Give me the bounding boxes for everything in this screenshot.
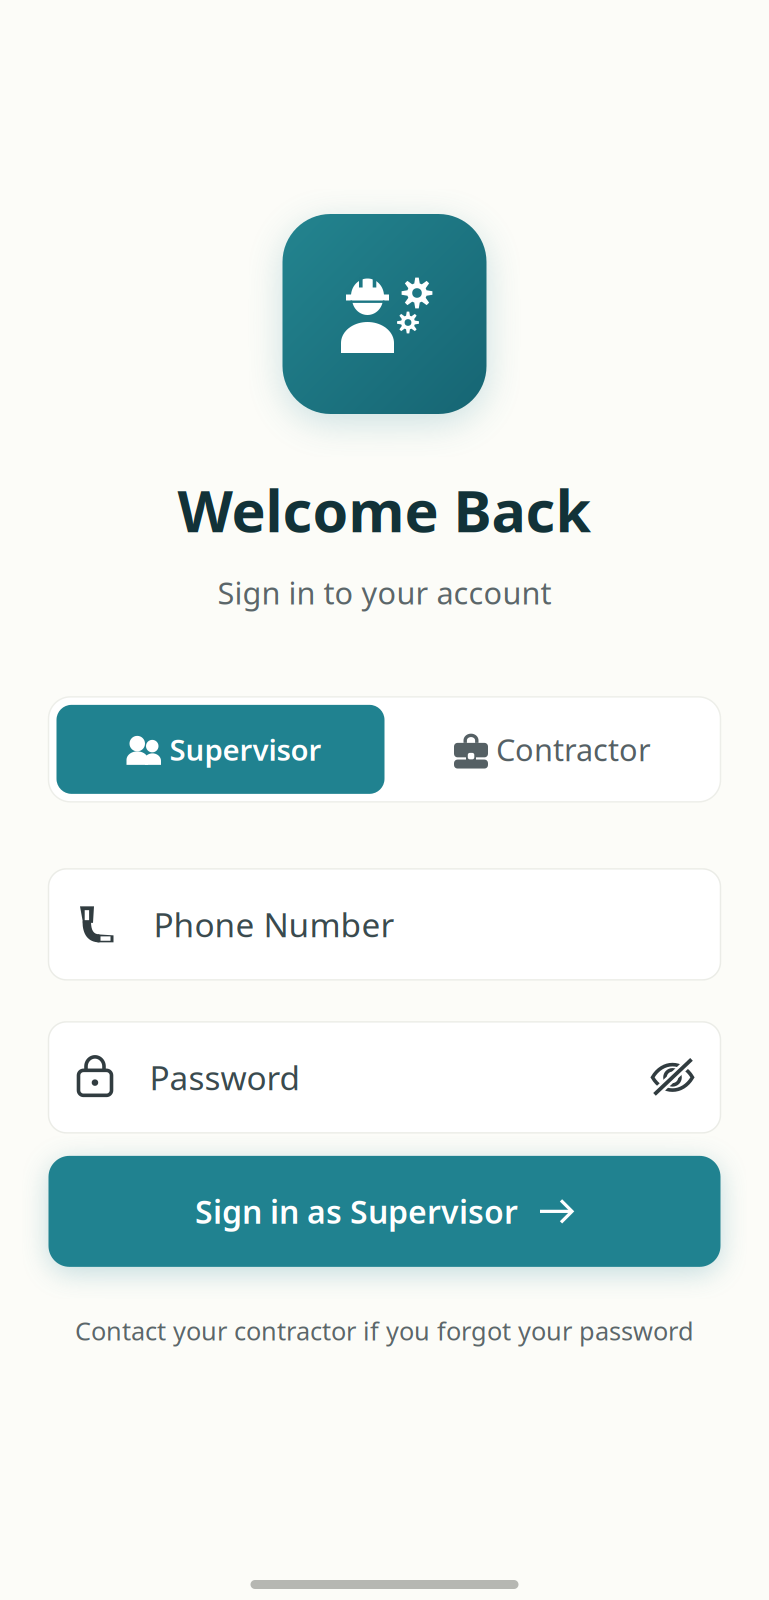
staticText: Welcome Back	[177, 472, 591, 548]
staticText: Supervisor	[169, 730, 321, 769]
staticText: Phone Number	[153, 902, 394, 946]
button[interactable]: Phone Number	[48, 869, 720, 980]
staticText: Sign in to your account	[217, 572, 551, 613]
button[interactable]: Sign in as Supervisor	[48, 1156, 720, 1267]
button[interactable]: Supervisor	[56, 705, 384, 794]
button[interactable]: Show password	[638, 1022, 720, 1133]
button[interactable]: Contractor	[384, 705, 712, 794]
staticText: Contractor	[496, 729, 651, 770]
button[interactable]: Password	[48, 1022, 638, 1133]
staticText: Password	[149, 1055, 300, 1099]
staticText: Sign in as Supervisor	[195, 1190, 518, 1233]
staticText: Contact your contractor if you forgot yo…	[75, 1314, 694, 1347]
